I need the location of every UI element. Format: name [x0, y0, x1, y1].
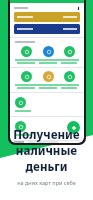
button[interactable]	[14, 24, 80, 34]
button[interactable]: Service	[64, 46, 75, 57]
button[interactable]: Service	[43, 71, 54, 82]
staticText: Получение	[13, 127, 80, 143]
button[interactable]: Service	[59, 71, 79, 89]
button[interactable]: Add	[67, 121, 80, 134]
button[interactable]: Service	[59, 46, 79, 64]
button[interactable]: Service	[64, 71, 75, 82]
button[interactable]: Service	[15, 97, 26, 108]
button[interactable]: Service	[21, 46, 32, 57]
button[interactable]: Service	[37, 46, 59, 64]
button[interactable]: Service	[15, 121, 26, 132]
button[interactable]: Service	[15, 71, 37, 89]
button[interactable]: Service	[43, 46, 54, 57]
staticText: на днях карт при себе	[17, 179, 76, 186]
button[interactable]: Service	[15, 46, 37, 64]
button[interactable]: Service	[37, 71, 59, 89]
button[interactable]	[14, 12, 80, 22]
button[interactable]: Service	[21, 71, 32, 82]
button[interactable]: Menu	[76, 6, 80, 10]
button[interactable]: Service	[10, 93, 84, 116]
staticText: наличные деньги	[4, 143, 89, 175]
button[interactable]: Service	[10, 117, 84, 140]
